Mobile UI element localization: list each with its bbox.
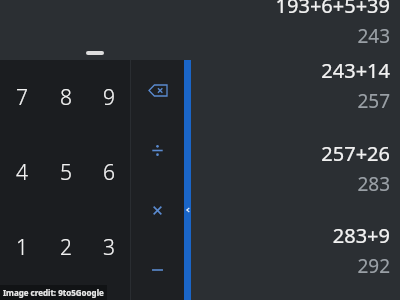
- button[interactable]: 7: [0, 60, 44, 135]
- button[interactable]: [44, 285, 87, 300]
- staticText: 5: [60, 158, 72, 187]
- button[interactable]: Resize panel: [184, 60, 191, 300]
- staticText: 6: [103, 158, 115, 187]
- staticText: 2: [60, 233, 72, 262]
- staticText: 257: [357, 88, 390, 114]
- button[interactable]: 6: [87, 135, 130, 210]
- button[interactable]: 243+14: [190, 57, 400, 114]
- staticText: 283: [357, 171, 390, 197]
- button[interactable]: 257+26: [190, 140, 400, 197]
- button[interactable]: 5: [44, 135, 87, 210]
- button[interactable]: 9: [87, 60, 130, 135]
- button[interactable]: Backspace: [131, 60, 184, 120]
- staticText: 1: [16, 233, 28, 262]
- staticText: 243+14: [321, 57, 390, 84]
- staticText: 4: [16, 158, 28, 187]
- staticText: 292: [357, 253, 390, 279]
- button[interactable]: 193+6+5+39: [190, 0, 400, 49]
- staticText: 193+6+5+39: [275, 0, 390, 19]
- staticText: Image credit: 9to5Google: [3, 287, 104, 298]
- staticText: 283+9: [332, 222, 390, 249]
- staticText: 7: [16, 83, 28, 112]
- button[interactable]: 283+9: [190, 222, 400, 279]
- button[interactable]: 8: [44, 60, 87, 135]
- button[interactable]: Divide: [131, 120, 184, 180]
- button[interactable]: Subtract: [131, 240, 184, 300]
- button[interactable]: 3: [87, 210, 130, 285]
- staticText: 3: [103, 233, 115, 262]
- button[interactable]: 2: [44, 210, 87, 285]
- staticText: 8: [60, 83, 72, 112]
- button[interactable]: 0: [0, 285, 44, 300]
- button[interactable]: 4: [0, 135, 44, 210]
- button[interactable]: Multiply: [131, 180, 184, 240]
- button[interactable]: [87, 285, 130, 300]
- button[interactable]: 1: [0, 210, 44, 285]
- staticText: 257+26: [321, 140, 390, 167]
- staticText: 243: [357, 23, 390, 49]
- staticText: 9: [103, 83, 115, 112]
